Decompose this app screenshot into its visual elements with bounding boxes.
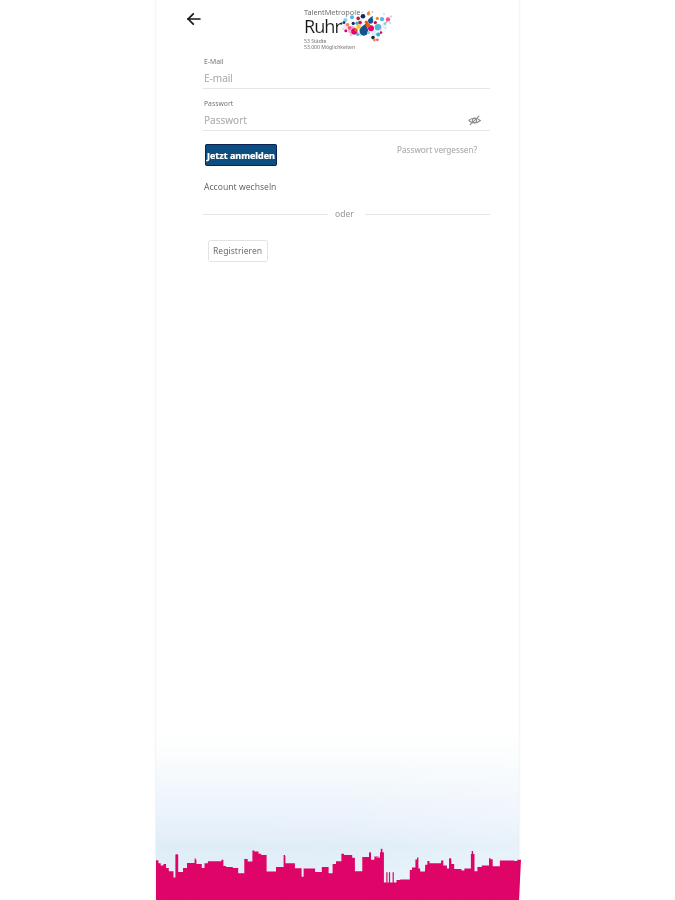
staticText: Account wechseln [204,181,277,193]
staticText: 53 Städte [304,38,327,45]
staticText: Passwort [204,99,234,108]
button[interactable]: Jetzt anmelden [205,144,277,166]
staticText: E-Mail [204,57,224,66]
staticText: oder [335,208,354,220]
button[interactable]: Account wechseln [204,181,277,193]
staticText: Registrieren [213,245,263,257]
staticText: TalentMetropole [304,7,361,17]
staticText: Passwort [204,113,247,127]
button[interactable]: Registrieren [208,240,268,262]
button[interactable]: Show password [468,114,481,127]
staticText: Passwort vergessen? [397,144,478,155]
button[interactable]: Back [182,7,206,31]
staticText: E-mail [204,71,233,85]
staticText: 53.000 Möglichkeiten [304,44,356,51]
staticText: Jetzt anmelden [207,149,275,161]
staticText: Ruhr [304,14,341,39]
button[interactable]: Passwort vergessen? [397,144,478,155]
